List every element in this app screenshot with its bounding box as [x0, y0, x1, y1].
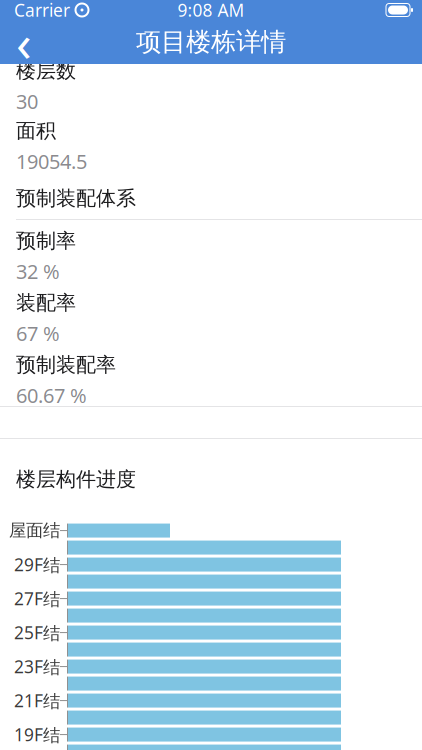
staticText: 预制装配体系 — [16, 186, 136, 211]
staticText: 60.67 % — [16, 382, 87, 409]
staticText: 预制率 — [16, 228, 76, 253]
staticText: Carrier — [14, 0, 70, 21]
staticText: 项目楼栋详情 — [136, 26, 286, 57]
staticText: ‹ — [16, 8, 32, 76]
button[interactable]: 楼层数 — [0, 64, 422, 110]
button[interactable]: Back — [2, 20, 46, 64]
button[interactable]: 装配率 — [0, 282, 422, 344]
button[interactable]: 预制装配率 — [0, 344, 422, 406]
staticText: 19054.5 — [16, 148, 87, 175]
staticText: 25F结 — [14, 621, 60, 644]
staticText: 67 % — [16, 320, 60, 347]
staticText: 21F结 — [14, 689, 60, 712]
button[interactable]: 面积 — [0, 110, 422, 172]
staticText: 装配率 — [16, 290, 76, 315]
staticText: 32 % — [16, 258, 60, 285]
button[interactable]: 预制率 — [0, 220, 422, 282]
staticText: 27F结 — [14, 587, 60, 610]
staticText: 预制装配率 — [16, 352, 116, 377]
staticText: 屋面结 — [9, 520, 60, 541]
staticText: 楼层数 — [16, 58, 76, 83]
staticText: 楼层构件进度 — [16, 467, 136, 492]
staticText: 30 — [16, 88, 38, 115]
staticText: 19F结 — [14, 723, 60, 746]
staticText: 9:08 AM — [177, 0, 244, 21]
staticText: 面积 — [16, 118, 56, 143]
button[interactable]: 预制装配体系 — [0, 172, 422, 220]
staticText: 29F结 — [14, 553, 60, 576]
staticText: 23F结 — [14, 655, 60, 678]
